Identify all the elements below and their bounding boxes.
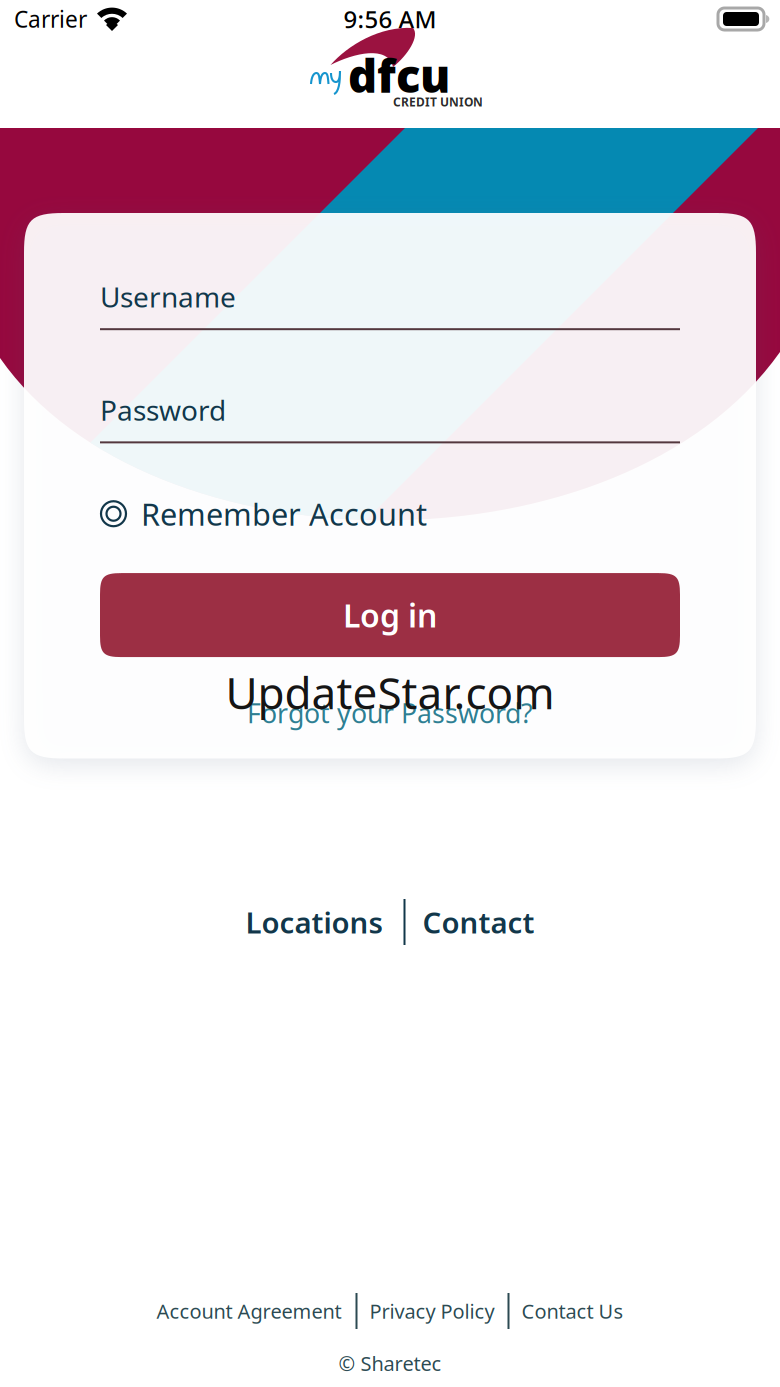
staticText: Password xyxy=(100,391,226,428)
button[interactable]: Contact Us xyxy=(509,1291,638,1331)
staticText: Forgot your Password? xyxy=(247,695,533,730)
staticText: Carrier xyxy=(14,4,87,34)
staticText: Remember Account xyxy=(141,493,427,534)
button[interactable]: Contact xyxy=(405,898,558,946)
button[interactable]: Remember Account xyxy=(100,493,680,534)
staticText: Log in xyxy=(343,594,437,636)
staticText: CREDIT UNION xyxy=(393,94,483,110)
staticText: Locations xyxy=(245,902,382,941)
staticText: Username xyxy=(100,278,236,315)
button[interactable]: Log in xyxy=(100,573,680,657)
staticText: Contact xyxy=(422,902,534,941)
button[interactable]: Locations xyxy=(221,898,403,946)
staticText: Contact Us xyxy=(521,1298,623,1324)
staticText: UpdateStar.com xyxy=(225,663,554,721)
staticText: Account Agreement xyxy=(156,1298,341,1324)
button[interactable]: Forgot your Password? xyxy=(100,695,680,730)
button[interactable]: Privacy Policy xyxy=(357,1291,507,1331)
staticText: © Sharetec xyxy=(338,1350,441,1377)
button[interactable]: Account Agreement xyxy=(141,1291,355,1331)
staticText: 9:56 AM xyxy=(343,3,436,35)
staticText: dfcu xyxy=(348,45,450,105)
staticText: Privacy Policy xyxy=(369,1298,494,1324)
